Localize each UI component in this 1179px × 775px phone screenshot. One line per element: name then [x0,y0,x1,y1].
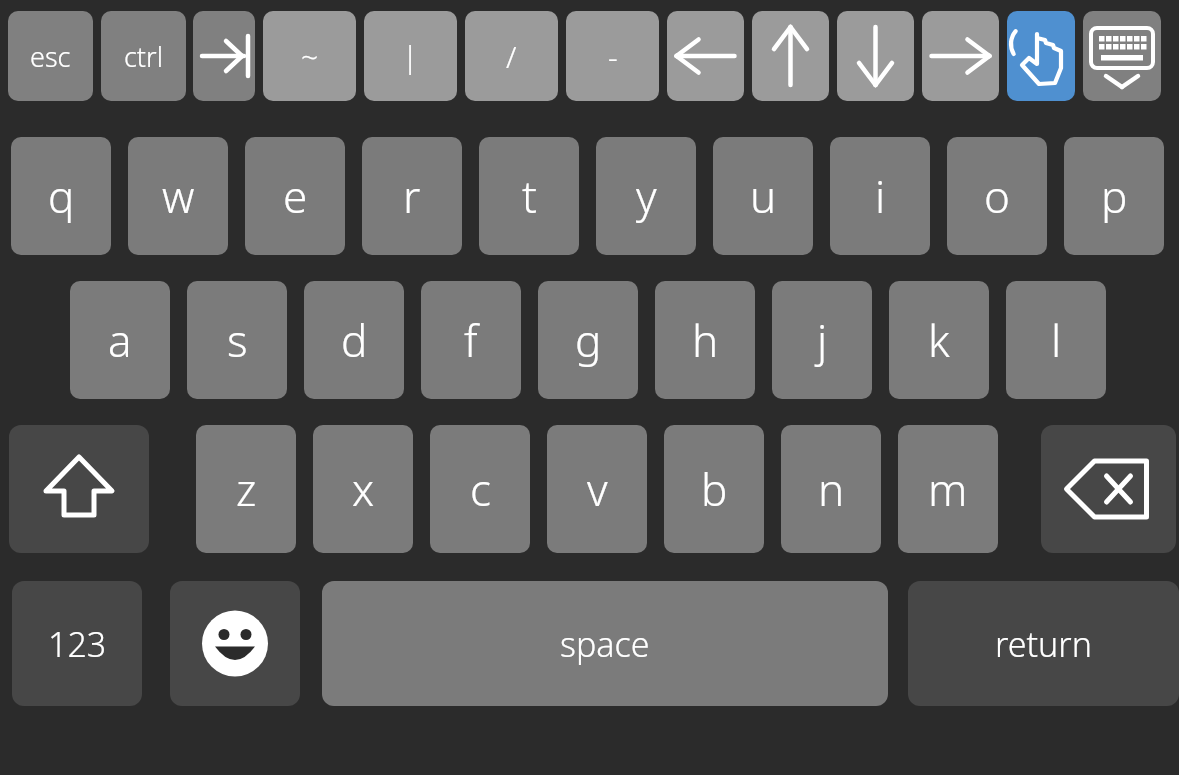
staticText: k [928,310,950,370]
button[interactable]: d [304,281,404,399]
staticText: l [1051,310,1062,370]
button[interactable]: o [947,137,1047,255]
button[interactable]: b [664,425,764,553]
staticText: a [108,310,132,370]
button[interactable]: u [713,137,813,255]
staticText: d [341,310,368,370]
button[interactable]: l [1006,281,1106,399]
staticText: / [506,36,517,77]
staticText: q [48,166,75,226]
button[interactable]: v [547,425,647,553]
button[interactable]: n [781,425,881,553]
staticText: c [470,459,491,519]
button[interactable]: k [889,281,989,399]
button[interactable]: p [1064,137,1164,255]
staticText: ctrl [124,38,163,75]
staticText: e [283,166,308,226]
staticText: t [522,166,537,226]
staticText: space [560,621,650,667]
staticText: s [227,310,248,370]
staticText: - [608,36,618,77]
button[interactable]: e [245,137,345,255]
button[interactable]: Shift [9,425,149,553]
button[interactable]: y [596,137,696,255]
button[interactable]: esc [8,11,93,101]
staticText: m [928,459,968,519]
staticText: z [236,459,257,519]
button[interactable]: c [430,425,530,553]
staticText: esc [30,38,71,75]
staticText: y [636,166,657,226]
button[interactable]: Backspace [1041,425,1176,553]
staticText: u [750,166,777,226]
button[interactable]: h [655,281,755,399]
button[interactable]: 123 [12,581,142,706]
button[interactable]: Down [837,11,914,101]
staticText: o [984,166,1010,226]
button[interactable]: w [128,137,228,255]
button[interactable]: z [196,425,296,553]
staticText: 123 [48,621,107,667]
button[interactable]: | [364,11,457,101]
button[interactable]: return [908,581,1179,706]
staticText: g [575,310,602,370]
button[interactable]: Hide keyboard [1083,11,1161,101]
button[interactable]: j [772,281,872,399]
button[interactable]: i [830,137,930,255]
button[interactable]: x [313,425,413,553]
button[interactable]: s [187,281,287,399]
staticText: j [817,310,828,370]
staticText: n [818,459,845,519]
button[interactable]: Touch pointer [1007,11,1075,101]
button[interactable]: t [479,137,579,255]
staticText: return [995,621,1092,667]
button[interactable]: Right [922,11,999,101]
button[interactable]: r [362,137,462,255]
button[interactable]: Tab [193,11,255,101]
button[interactable]: ~ [263,11,356,101]
button[interactable]: ctrl [101,11,186,101]
button[interactable]: - [566,11,659,101]
button[interactable]: Emoji [170,581,300,706]
staticText: | [402,36,419,77]
button[interactable]: Left [667,11,744,101]
staticText: b [701,459,728,519]
staticText: p [1101,166,1128,226]
staticText: w [162,166,195,226]
button[interactable]: / [465,11,558,101]
button[interactable]: f [421,281,521,399]
button[interactable]: g [538,281,638,399]
button[interactable]: space [322,581,888,706]
staticText: x [352,459,375,519]
button[interactable]: a [70,281,170,399]
staticText: v [587,459,608,519]
staticText: ~ [301,36,319,77]
staticText: i [875,166,886,226]
staticText: f [464,310,478,370]
button[interactable]: Up [752,11,829,101]
staticText: r [403,166,421,226]
staticText: h [692,310,719,370]
button[interactable]: m [898,425,998,553]
button[interactable]: q [11,137,111,255]
